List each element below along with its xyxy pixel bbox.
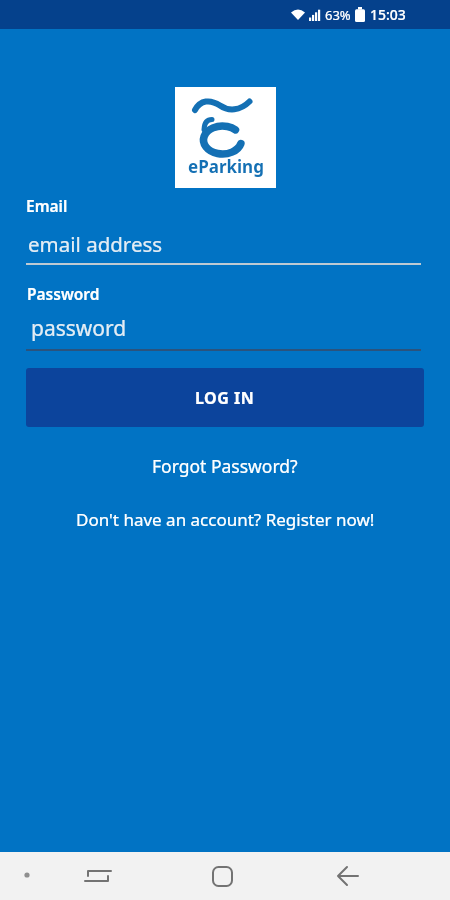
staticText: 63%	[325, 6, 351, 24]
staticText: eParking	[188, 155, 264, 178]
button[interactable]: LOG IN	[26, 368, 424, 427]
staticText: email address	[28, 230, 163, 258]
staticText: Don't have an account? Register now!	[76, 508, 375, 531]
button[interactable]	[328, 856, 368, 896]
staticText: Email	[26, 195, 68, 216]
staticText: LOG IN	[195, 387, 255, 409]
button[interactable]	[78, 856, 118, 896]
staticText: Password	[27, 283, 100, 304]
button[interactable]	[26, 308, 421, 351]
staticText: Forgot Password?	[152, 454, 298, 478]
staticText: password	[31, 314, 127, 343]
button[interactable]	[202, 856, 242, 896]
button[interactable]: Don't have an account? Register now!	[76, 508, 375, 531]
button[interactable]: Forgot Password?	[152, 454, 298, 478]
button[interactable]	[26, 222, 421, 265]
staticText: 15:03	[370, 5, 406, 24]
